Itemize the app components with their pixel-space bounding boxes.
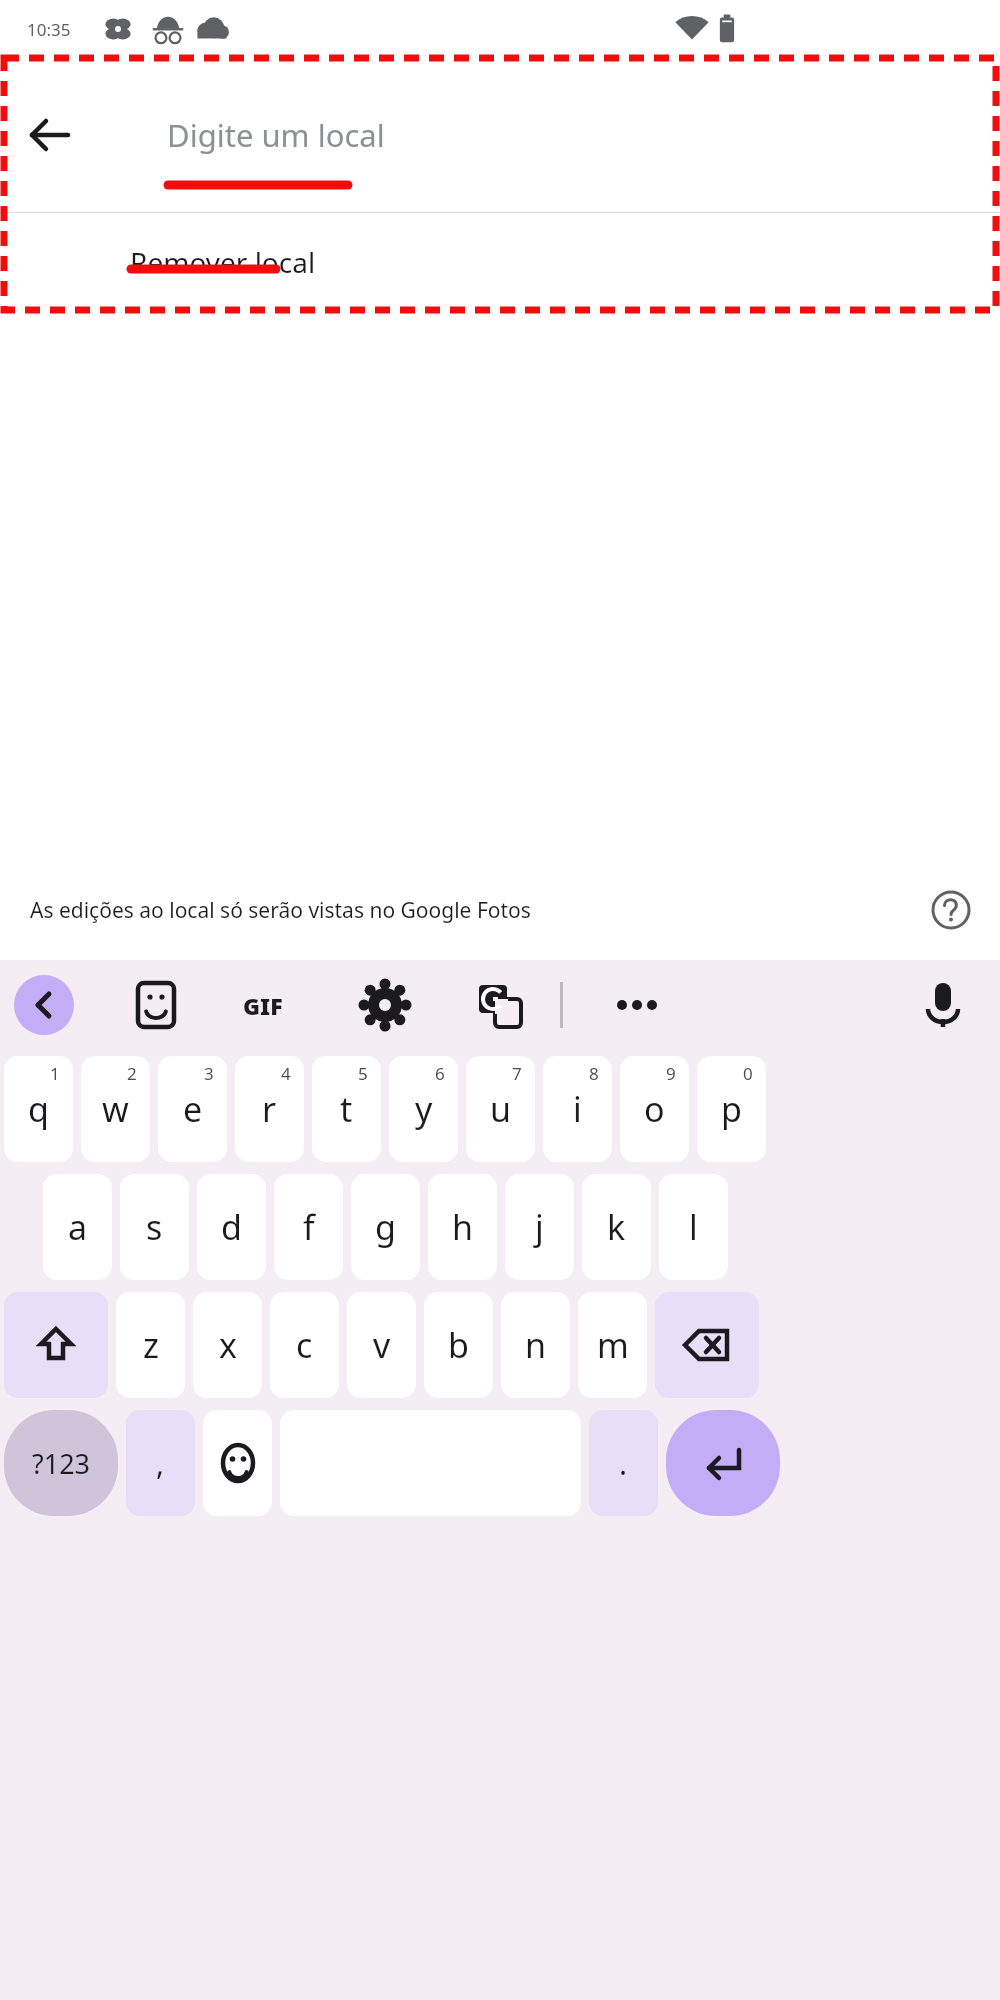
staticText: ?123 xyxy=(32,1445,91,1482)
button[interactable]: Mais opções xyxy=(602,970,672,1040)
staticText: g xyxy=(375,1204,396,1250)
button[interactable]: g xyxy=(351,1174,420,1280)
button[interactable]: Voz xyxy=(908,970,978,1040)
staticText: o xyxy=(644,1086,665,1132)
button[interactable]: d xyxy=(197,1174,266,1280)
staticText: q xyxy=(28,1086,49,1132)
staticText: s xyxy=(146,1204,163,1250)
button[interactable]: m xyxy=(578,1292,647,1398)
button[interactable] xyxy=(666,1410,780,1516)
button[interactable]: a xyxy=(43,1174,112,1280)
button[interactable]: ?123 xyxy=(4,1410,118,1516)
staticText: GIF xyxy=(243,990,283,1021)
staticText: 1 xyxy=(50,1062,60,1085)
staticText: f xyxy=(303,1204,315,1250)
staticText: Digite um local xyxy=(167,114,385,156)
staticText: v xyxy=(373,1322,391,1368)
button[interactable]: Remover local xyxy=(130,227,316,297)
staticText: 10:35 xyxy=(27,18,71,41)
staticText: 2 xyxy=(127,1062,137,1085)
staticText: h xyxy=(452,1204,474,1250)
button[interactable]: o xyxy=(620,1056,689,1162)
button[interactable]: Voltar xyxy=(20,105,80,165)
staticText: i xyxy=(573,1086,582,1132)
staticText: t xyxy=(340,1086,353,1132)
button[interactable]: k xyxy=(582,1174,651,1280)
staticText: j xyxy=(535,1204,544,1250)
button[interactable]: GIF xyxy=(228,970,298,1040)
button[interactable]: w xyxy=(81,1056,150,1162)
staticText: 5 xyxy=(358,1062,368,1085)
button[interactable]: c xyxy=(270,1292,339,1398)
button[interactable]: x xyxy=(193,1292,262,1398)
button[interactable]: z xyxy=(116,1292,185,1398)
staticText: 4 xyxy=(281,1062,291,1085)
staticText: x xyxy=(219,1322,237,1368)
staticText: e xyxy=(183,1086,203,1132)
staticText: a xyxy=(68,1204,88,1250)
staticText: m xyxy=(597,1322,629,1368)
button[interactable]: Adesivos xyxy=(121,970,191,1040)
staticText: y xyxy=(415,1086,433,1132)
staticText: 3 xyxy=(204,1062,214,1085)
staticText: k xyxy=(607,1204,626,1250)
button[interactable] xyxy=(655,1292,759,1398)
button[interactable]: p xyxy=(697,1056,766,1162)
button[interactable]: e xyxy=(158,1056,227,1162)
staticText: , xyxy=(156,1443,165,1484)
button[interactable]: f xyxy=(274,1174,343,1280)
staticText: p xyxy=(721,1086,742,1132)
staticText: l xyxy=(689,1204,698,1250)
button[interactable]: Fechar barra xyxy=(14,975,74,1035)
button[interactable]: Tradutor xyxy=(464,970,534,1040)
staticText: n xyxy=(525,1322,547,1368)
staticText: z xyxy=(143,1322,159,1368)
button[interactable]: j xyxy=(505,1174,574,1280)
staticText: b xyxy=(448,1322,469,1368)
button[interactable]: Configurações xyxy=(350,970,420,1040)
button[interactable]: h xyxy=(428,1174,497,1280)
button[interactable] xyxy=(4,1292,108,1398)
button[interactable]: l xyxy=(659,1174,728,1280)
button[interactable]: , xyxy=(126,1410,195,1516)
button[interactable]: n xyxy=(501,1292,570,1398)
staticText: d xyxy=(221,1204,242,1250)
staticText: 9 xyxy=(666,1062,676,1085)
button[interactable]: . xyxy=(589,1410,658,1516)
staticText: 8 xyxy=(589,1062,599,1085)
staticText: w xyxy=(102,1086,129,1132)
button[interactable] xyxy=(203,1410,272,1516)
button[interactable]: t xyxy=(312,1056,381,1162)
button[interactable]: r xyxy=(235,1056,304,1162)
staticText: u xyxy=(490,1086,512,1132)
button[interactable]: s xyxy=(120,1174,189,1280)
staticText: 6 xyxy=(435,1062,445,1085)
button[interactable]: Digite um local xyxy=(167,95,587,175)
button[interactable]: i xyxy=(543,1056,612,1162)
staticText: As edições ao local só serão vistas no G… xyxy=(30,896,531,925)
staticText: Remover local xyxy=(130,243,316,281)
button[interactable]: v xyxy=(347,1292,416,1398)
staticText: 0 xyxy=(743,1062,753,1085)
staticText: . xyxy=(619,1443,628,1484)
staticText: c xyxy=(296,1322,313,1368)
button[interactable]: q xyxy=(4,1056,73,1162)
button[interactable]: u xyxy=(466,1056,535,1162)
staticText: r xyxy=(262,1086,277,1132)
staticText: 7 xyxy=(512,1062,522,1085)
button[interactable]: b xyxy=(424,1292,493,1398)
button[interactable]: Ajuda xyxy=(922,881,980,939)
button[interactable]: y xyxy=(389,1056,458,1162)
